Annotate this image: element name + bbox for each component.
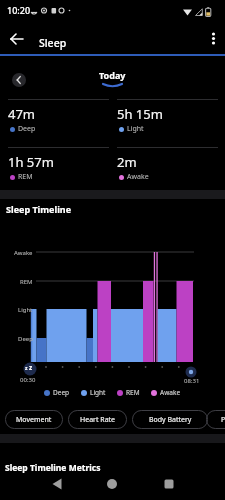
staticText: Light bbox=[127, 124, 144, 134]
staticText: Today bbox=[99, 69, 126, 81]
staticText: Awake bbox=[160, 388, 181, 397]
staticText: Deep bbox=[18, 335, 33, 343]
staticText: z bbox=[25, 365, 28, 372]
button[interactable]: Heart Rate bbox=[68, 410, 127, 429]
button[interactable]: Pulse Ox bbox=[206, 410, 225, 429]
button[interactable] bbox=[101, 473, 123, 495]
staticText: Awake bbox=[14, 249, 33, 257]
button[interactable] bbox=[8, 30, 26, 48]
staticText: Heart Rate bbox=[80, 415, 116, 425]
staticText: Sleep Timeline Metrics bbox=[5, 462, 101, 474]
button[interactable] bbox=[47, 473, 69, 495]
button[interactable]: Movement bbox=[5, 410, 63, 429]
staticText: Light bbox=[18, 306, 33, 314]
staticText: Sleep Timeline bbox=[6, 203, 72, 215]
button[interactable]: Body Battery bbox=[132, 410, 208, 429]
staticText: Body Battery bbox=[149, 415, 192, 425]
staticText: Awake bbox=[127, 172, 149, 182]
staticText: 47m bbox=[8, 105, 36, 123]
staticText: Movement bbox=[16, 415, 52, 425]
staticText: 1h 57m bbox=[8, 153, 54, 171]
button[interactable]: Today bbox=[87, 69, 137, 93]
staticText: REM bbox=[126, 388, 140, 397]
staticText: Sleep bbox=[39, 36, 67, 50]
button[interactable] bbox=[205, 30, 223, 50]
button[interactable] bbox=[12, 73, 26, 87]
staticText: z bbox=[29, 363, 33, 372]
staticText: Pulse Ox bbox=[221, 415, 225, 425]
staticText: REM bbox=[18, 172, 33, 182]
staticText: 00:30 bbox=[20, 376, 36, 384]
staticText: 10:20 bbox=[7, 4, 31, 16]
staticText: Deep bbox=[18, 124, 36, 134]
staticText: 2m bbox=[117, 153, 137, 171]
staticText: Light bbox=[90, 388, 106, 397]
button[interactable]: 47m bbox=[8, 99, 109, 147]
staticText: 08:31 bbox=[184, 377, 200, 385]
button[interactable]: 1h 57m bbox=[8, 147, 109, 195]
button[interactable]: 5h 15m bbox=[117, 99, 218, 147]
button[interactable] bbox=[158, 473, 180, 495]
button[interactable]: 2m bbox=[117, 147, 218, 195]
staticText: REM bbox=[20, 278, 33, 286]
staticText: 5h 15m bbox=[117, 105, 163, 123]
staticText: Deep bbox=[53, 388, 70, 397]
